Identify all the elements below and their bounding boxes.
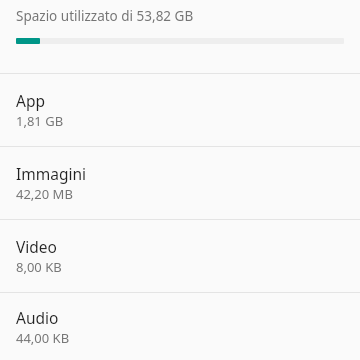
staticText: 44,00 KB (16, 329, 70, 347)
staticText: Video (16, 236, 57, 257)
staticText: Spazio utilizzato di 53,82 GB (16, 7, 194, 25)
staticText: 42,20 MB (16, 185, 73, 203)
staticText: Immagini (16, 163, 87, 184)
staticText: App (16, 90, 45, 111)
button[interactable]: Audio (0, 293, 360, 360)
button[interactable]: App (0, 74, 360, 147)
staticText: 8,00 KB (16, 258, 62, 276)
button[interactable]: Immagini (0, 147, 360, 220)
button[interactable]: Video (0, 220, 360, 293)
staticText: Audio (16, 307, 59, 328)
staticText: 1,81 GB (16, 112, 64, 130)
